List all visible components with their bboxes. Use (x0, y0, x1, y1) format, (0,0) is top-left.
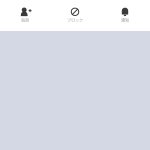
staticText: ブロック (67, 17, 83, 23)
button[interactable]: 追加 (0, 2, 50, 29)
button[interactable]: 通知 (100, 2, 150, 29)
staticText: 追加 (21, 17, 29, 23)
staticText: 通知 (121, 17, 129, 23)
button[interactable]: ブロック (50, 2, 100, 29)
